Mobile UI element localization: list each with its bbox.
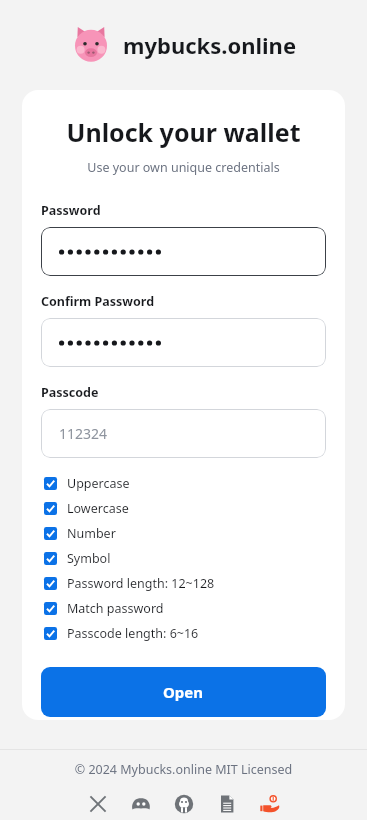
staticText: Open [163,682,204,702]
button[interactable]: Donate [257,791,283,817]
button[interactable]: 112324 [41,409,326,458]
staticText: mybucks.online [123,30,297,60]
button[interactable] [41,227,326,276]
staticText: Password length: 12~128 [67,575,215,592]
button[interactable]: Number [41,521,326,546]
button[interactable]: Open [41,667,326,717]
staticText: Confirm Password [41,293,155,310]
button[interactable]: GitHub [171,791,197,817]
button[interactable]: Passcode length: 6~16 [41,621,326,646]
staticText: © 2024 Mybucks.online MIT Licensed [0,761,367,778]
staticText: Unlock your wallet [41,115,326,149]
staticText: Match password [67,600,164,617]
staticText: Uppercase [67,475,130,492]
button[interactable]: Documentation [214,791,240,817]
button[interactable]: Symbol [41,546,326,571]
button[interactable]: Password length: 12~128 [41,571,326,596]
button[interactable] [41,318,326,367]
staticText: Password [41,202,101,219]
button[interactable]: Match password [41,596,326,621]
staticText: Symbol [67,550,111,567]
staticText: Passcode length: 6~16 [67,625,199,642]
staticText: Lowercase [67,500,129,517]
staticText: 112324 [59,424,108,443]
button[interactable]: X (Twitter) [85,791,111,817]
button[interactable]: Uppercase [41,471,326,496]
button[interactable]: Lowercase [41,496,326,521]
staticText: Number [67,525,116,542]
staticText: Passcode [41,384,99,401]
button[interactable]: Discord [128,791,154,817]
staticText: Use your own unique credentials [41,159,326,176]
